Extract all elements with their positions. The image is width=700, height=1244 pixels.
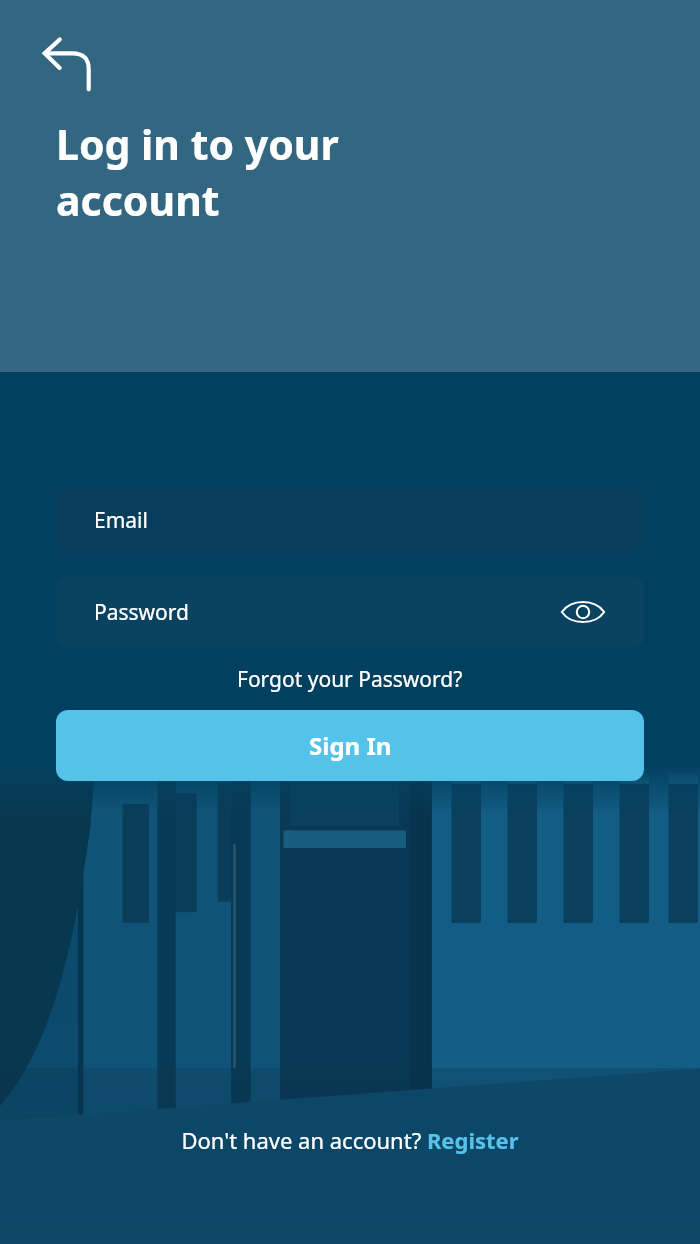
staticText: Don't have an account? Register xyxy=(181,1125,519,1155)
button[interactable]: Don't have an account? Register xyxy=(181,1125,519,1155)
button[interactable]: Sign In xyxy=(56,710,644,781)
button[interactable]: Show password xyxy=(560,596,606,628)
staticText: Email xyxy=(94,506,148,535)
button[interactable]: Email xyxy=(56,487,644,554)
staticText: Forgot your Password? xyxy=(237,665,463,694)
button[interactable]: Password xyxy=(56,576,644,648)
button[interactable]: Back xyxy=(40,36,98,94)
staticText: Sign In xyxy=(309,729,392,762)
button[interactable]: Forgot your Password? xyxy=(56,660,644,699)
staticText: Password xyxy=(94,598,189,627)
staticText: Log in to your account xyxy=(56,116,339,228)
